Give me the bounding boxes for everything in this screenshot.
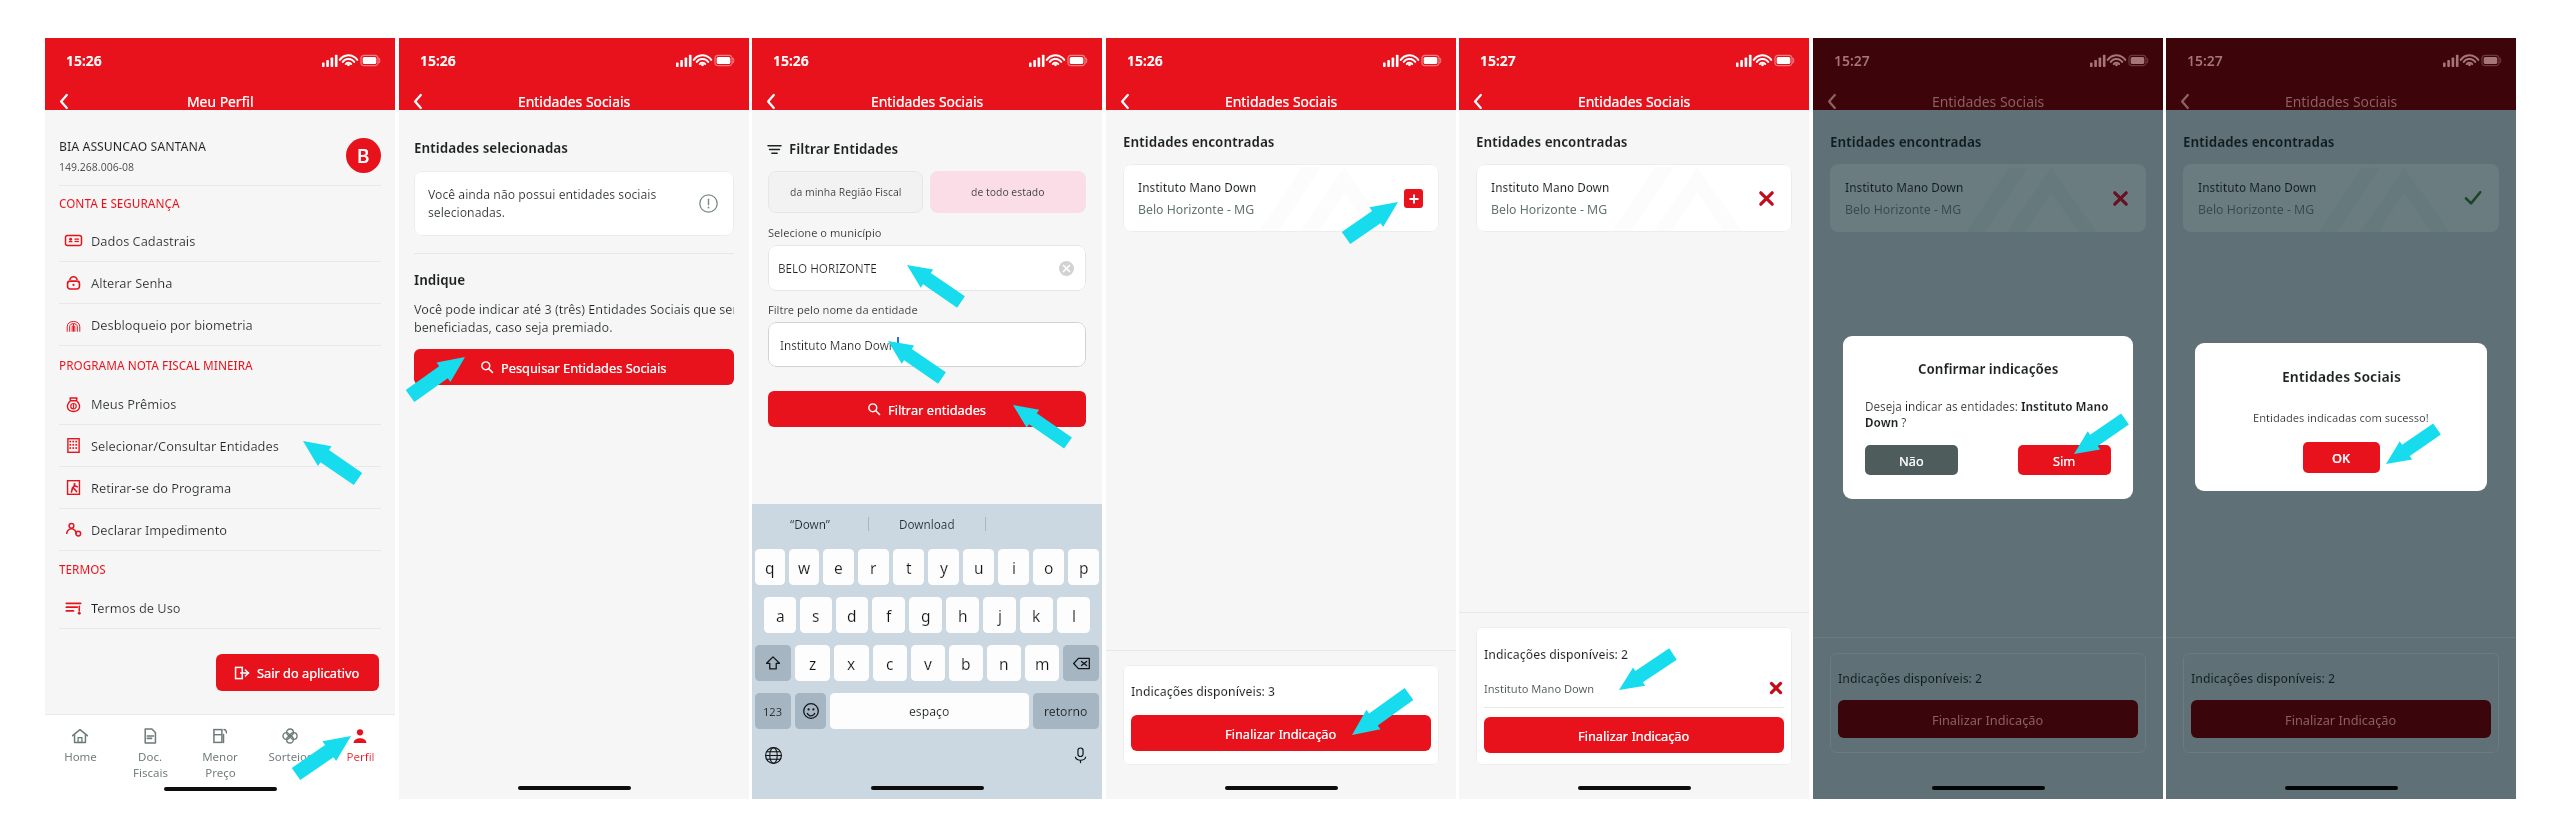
button[interactable]: Sair do aplicativo (216, 654, 379, 691)
button[interactable]: OK (2303, 442, 2380, 473)
button[interactable]: Doc. (115, 715, 185, 785)
button[interactable]: Voltar (753, 84, 787, 118)
staticText: Entidades encontradas (1476, 133, 1628, 151)
button[interactable]: d (836, 597, 868, 633)
button[interactable]: Idioma (765, 747, 782, 764)
button[interactable]: x (834, 645, 869, 681)
staticText: TERMOS (59, 561, 106, 577)
button[interactable]: Selecionar/Consultar Entidades (45, 425, 395, 466)
staticText: Doc. (138, 749, 162, 765)
button[interactable]: retorno (1033, 693, 1099, 729)
button[interactable]: j (983, 597, 1016, 633)
button[interactable]: Microfone (1072, 747, 1089, 764)
button[interactable]: Alterar Senha (45, 262, 395, 303)
button[interactable]: Instituto Mano Down (768, 322, 1086, 367)
staticText: Entidades Sociais (871, 92, 984, 111)
button[interactable]: a (764, 597, 796, 633)
button[interactable]: e (823, 549, 854, 585)
staticText: i (1012, 557, 1016, 578)
button[interactable]: Voltar (1814, 84, 1848, 118)
button[interactable]: Voltar (400, 84, 434, 118)
button[interactable]: Declarar Impedimento (45, 509, 395, 550)
staticText: c (886, 653, 894, 674)
button[interactable]: o (1033, 549, 1064, 585)
staticText: Meus Prêmios (91, 395, 177, 412)
staticText: Finalizar Indicação (1225, 725, 1337, 742)
button[interactable]: espaço (830, 693, 1029, 729)
button[interactable]: da minha Região Fiscal (768, 171, 923, 213)
staticText: Entidades encontradas (1123, 133, 1275, 151)
button[interactable]: Voltar (1107, 84, 1141, 118)
staticText: k (1032, 605, 1041, 626)
button[interactable]: “Down” (752, 504, 868, 543)
button[interactable]: Remover entidade (2110, 188, 2130, 208)
button[interactable]: l (1057, 597, 1090, 633)
button[interactable]: Finalizar Indicação (1484, 717, 1784, 753)
button[interactable]: u (963, 549, 994, 585)
button[interactable]: y (928, 549, 959, 585)
button[interactable]: Desbloqueio por biometria (45, 304, 395, 345)
button[interactable]: m (1025, 645, 1059, 681)
button[interactable]: Voltar (46, 84, 80, 118)
staticText: h (958, 605, 968, 626)
button[interactable]: Finalizar Indicação (1838, 700, 2138, 738)
button[interactable]: de todo estado (930, 171, 1086, 213)
staticText: 15:26 (420, 51, 456, 70)
staticText: Filtrar entidades (888, 401, 986, 418)
staticText: Filtrar Entidades (789, 140, 899, 158)
button[interactable]: p (1068, 549, 1099, 585)
button[interactable]: 123 (755, 693, 791, 729)
button[interactable]: h (946, 597, 979, 633)
button[interactable]: Download (869, 504, 985, 543)
staticText: Belo Horizonte - MG (1491, 201, 1608, 218)
button[interactable]: b (949, 645, 983, 681)
button[interactable]: c (873, 645, 907, 681)
staticText: v (924, 653, 932, 674)
button[interactable]: Finalizar Indicação (1131, 715, 1431, 751)
button[interactable]: t (893, 549, 924, 585)
button[interactable]: Perfil (325, 715, 395, 785)
button[interactable]: Finalizar Indicação (2191, 700, 2491, 738)
button[interactable]: z (795, 645, 830, 681)
button[interactable]: Meus Prêmios (45, 383, 395, 424)
button[interactable]: Entidade confirmada (2463, 188, 2483, 208)
staticText: j (998, 605, 1002, 626)
button[interactable]: q (755, 549, 785, 585)
button[interactable]: Apagar (1063, 645, 1099, 681)
button[interactable]: i (998, 549, 1029, 585)
button[interactable]: Remover entidade (1756, 188, 1776, 208)
button[interactable]: k (1020, 597, 1053, 633)
button[interactable]: Filtrar entidades (768, 391, 1086, 427)
button[interactable]: BELO HORIZONTE (768, 245, 1086, 291)
button[interactable]: Remover indicação (1768, 680, 1784, 696)
staticText: da minha Região Fiscal (790, 185, 902, 199)
button[interactable]: Termos de Uso (45, 587, 395, 628)
button[interactable]: Sorteios (255, 715, 325, 785)
button[interactable]: g (909, 597, 942, 633)
button[interactable]: r (858, 549, 889, 585)
button[interactable]: Sim (2018, 445, 2111, 475)
button[interactable]: Retirar-se do Programa (45, 467, 395, 508)
button[interactable]: Dados Cadastrais (45, 220, 395, 261)
staticText: 15:26 (773, 51, 809, 70)
button[interactable]: Voltar (1460, 84, 1494, 118)
button[interactable]: v (911, 645, 945, 681)
button[interactable]: Shift (755, 645, 791, 681)
button[interactable]: s (800, 597, 832, 633)
button[interactable]: Emoji (795, 693, 826, 729)
staticText: Filtre pelo nome da entidade (768, 302, 918, 317)
staticText: g (921, 605, 931, 626)
staticText: Desbloqueio por biometria (91, 316, 253, 333)
button[interactable]: Pesquisar Entidades Sociais (414, 349, 734, 385)
staticText: r (870, 557, 877, 578)
button[interactable]: Menor (185, 715, 255, 785)
button[interactable]: f (872, 597, 905, 633)
staticText: Entidades Sociais (518, 92, 631, 111)
staticText: Home (64, 749, 97, 765)
button[interactable]: Não (1865, 445, 1958, 475)
button[interactable]: n (987, 645, 1021, 681)
button[interactable]: Voltar (2167, 84, 2201, 118)
button[interactable]: Home (45, 715, 115, 785)
button[interactable]: w (789, 549, 819, 585)
button[interactable]: Adicionar entidade (1404, 189, 1423, 208)
